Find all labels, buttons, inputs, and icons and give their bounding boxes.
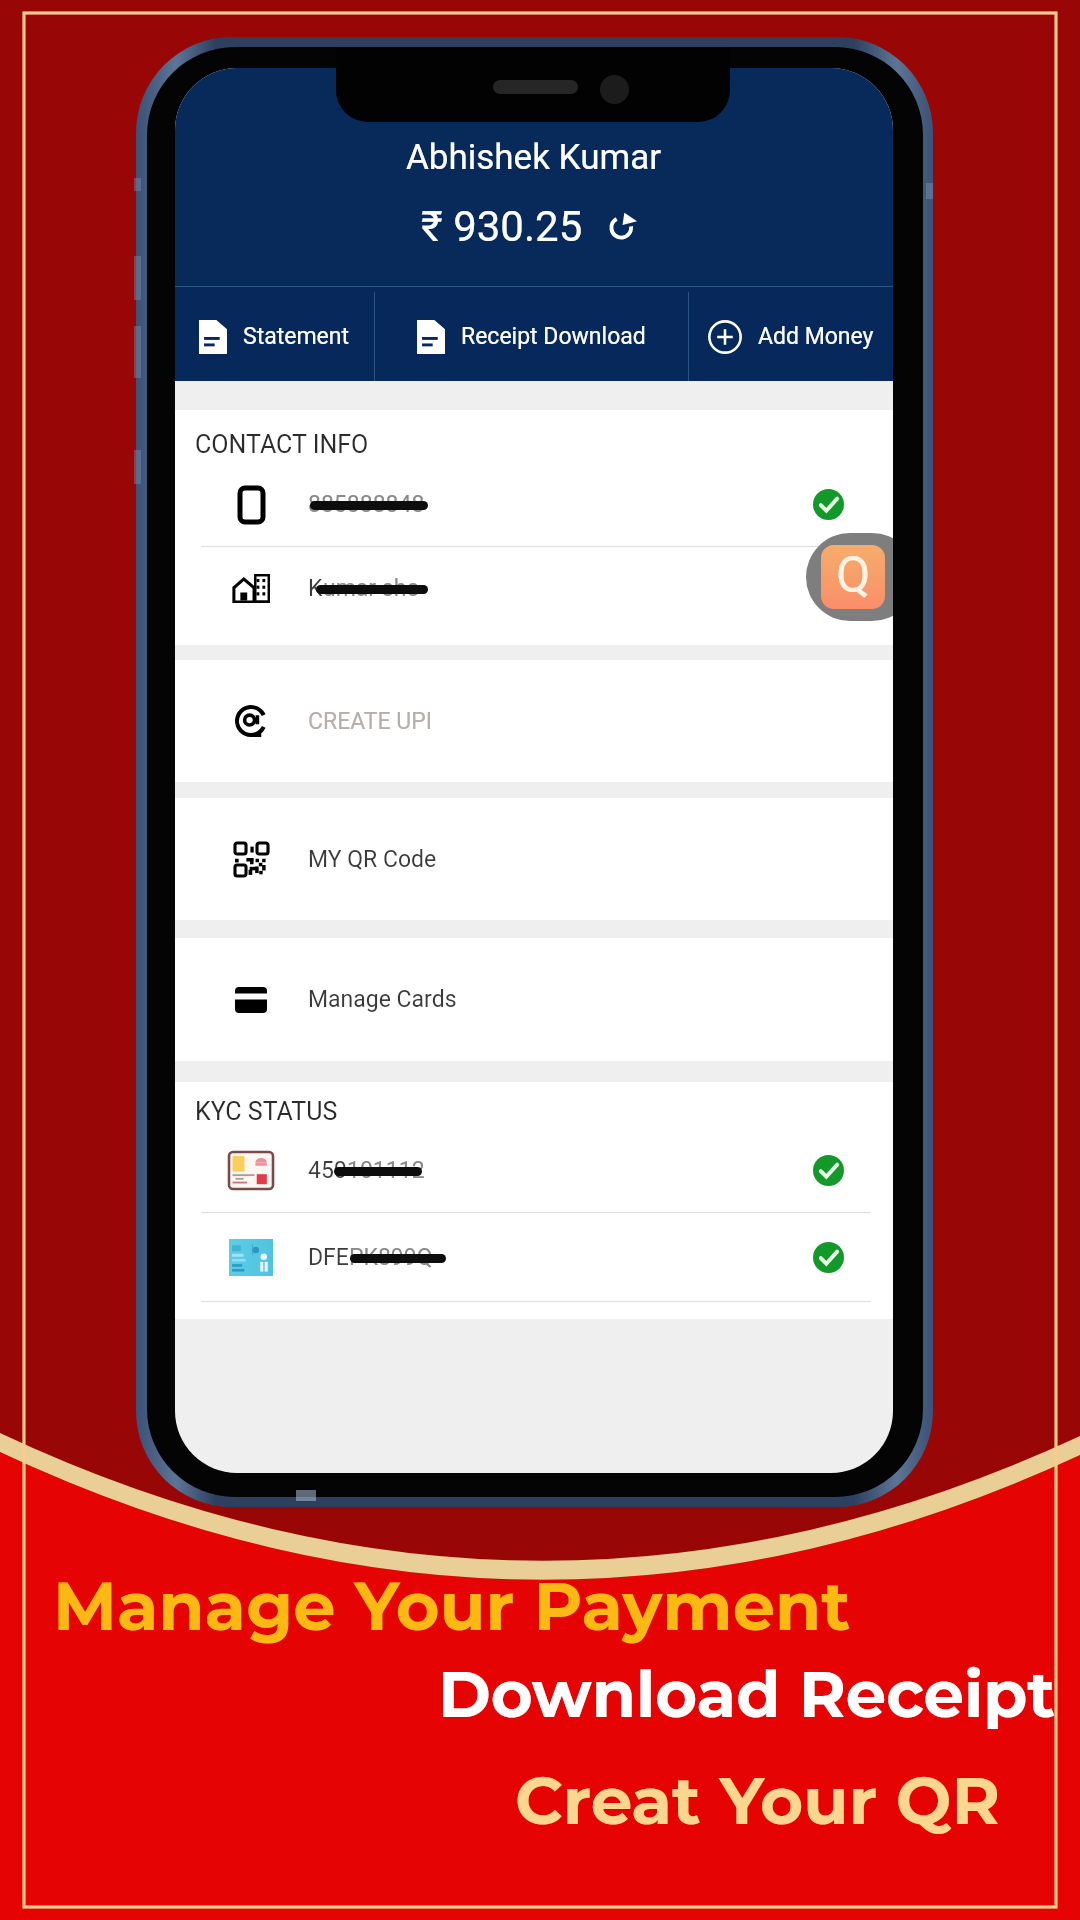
staticText: Manage Your Payment bbox=[53, 1565, 851, 1647]
staticText: DFE bbox=[308, 1244, 349, 1271]
staticText: CONTACT INFO bbox=[195, 430, 369, 459]
staticText: Creat Your QR bbox=[515, 1760, 1000, 1840]
staticText: Add Money bbox=[758, 323, 874, 350]
staticText: Abhishek Kumar bbox=[406, 137, 662, 178]
staticText: Download Receipt bbox=[438, 1655, 1056, 1733]
staticText: K bbox=[308, 575, 323, 602]
button[interactable]: 450 bbox=[175, 1129, 893, 1212]
button[interactable]: MY QR Code bbox=[175, 798, 893, 920]
staticText: 885888848 bbox=[308, 491, 425, 518]
staticText: 450 bbox=[308, 1157, 347, 1184]
staticText: Receipt Download bbox=[461, 323, 646, 350]
staticText: ₹ 930.25 bbox=[421, 202, 583, 251]
button[interactable]: K bbox=[175, 547, 893, 630]
staticText: Manage Cards bbox=[308, 986, 457, 1013]
staticText: 101112 bbox=[347, 1157, 425, 1184]
button[interactable]: DFE bbox=[175, 1213, 893, 1301]
button[interactable]: Quick actions bbox=[806, 533, 893, 621]
button[interactable]: CREATE UPI bbox=[175, 660, 893, 782]
button[interactable]: Add Money bbox=[689, 292, 893, 381]
staticText: MY QR Code bbox=[308, 846, 437, 873]
staticText: Q bbox=[836, 546, 871, 605]
staticText: KYC STATUS bbox=[195, 1097, 338, 1126]
button[interactable]: 885888848 bbox=[175, 463, 893, 546]
button[interactable]: Refresh balance bbox=[607, 211, 638, 242]
button[interactable]: Manage Cards bbox=[175, 938, 893, 1061]
staticText: PK899Q bbox=[349, 1244, 433, 1271]
button[interactable]: Statement bbox=[175, 292, 374, 381]
staticText: CREATE UPI bbox=[308, 708, 432, 735]
staticText: Statement bbox=[243, 323, 350, 350]
button[interactable]: Receipt Download bbox=[375, 292, 688, 381]
staticText: umar sho bbox=[323, 575, 420, 602]
